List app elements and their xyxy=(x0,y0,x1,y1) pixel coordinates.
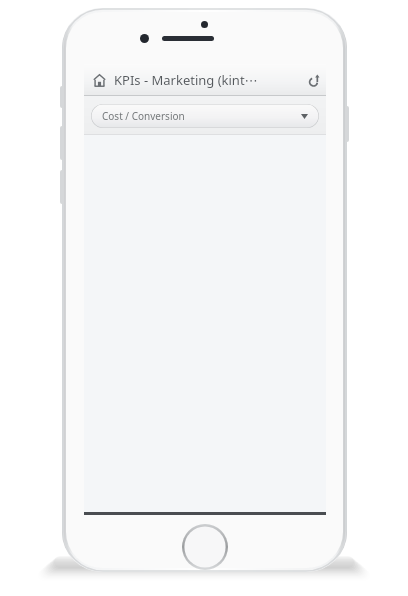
button[interactable]: Refresh xyxy=(300,64,326,96)
button[interactable]: Home xyxy=(84,64,114,96)
button[interactable]: Cost / Conversion xyxy=(91,104,319,128)
staticText: Cost / Conversion xyxy=(102,109,185,123)
staticText: KPIs - Marketing (kint⋯ xyxy=(114,71,300,89)
